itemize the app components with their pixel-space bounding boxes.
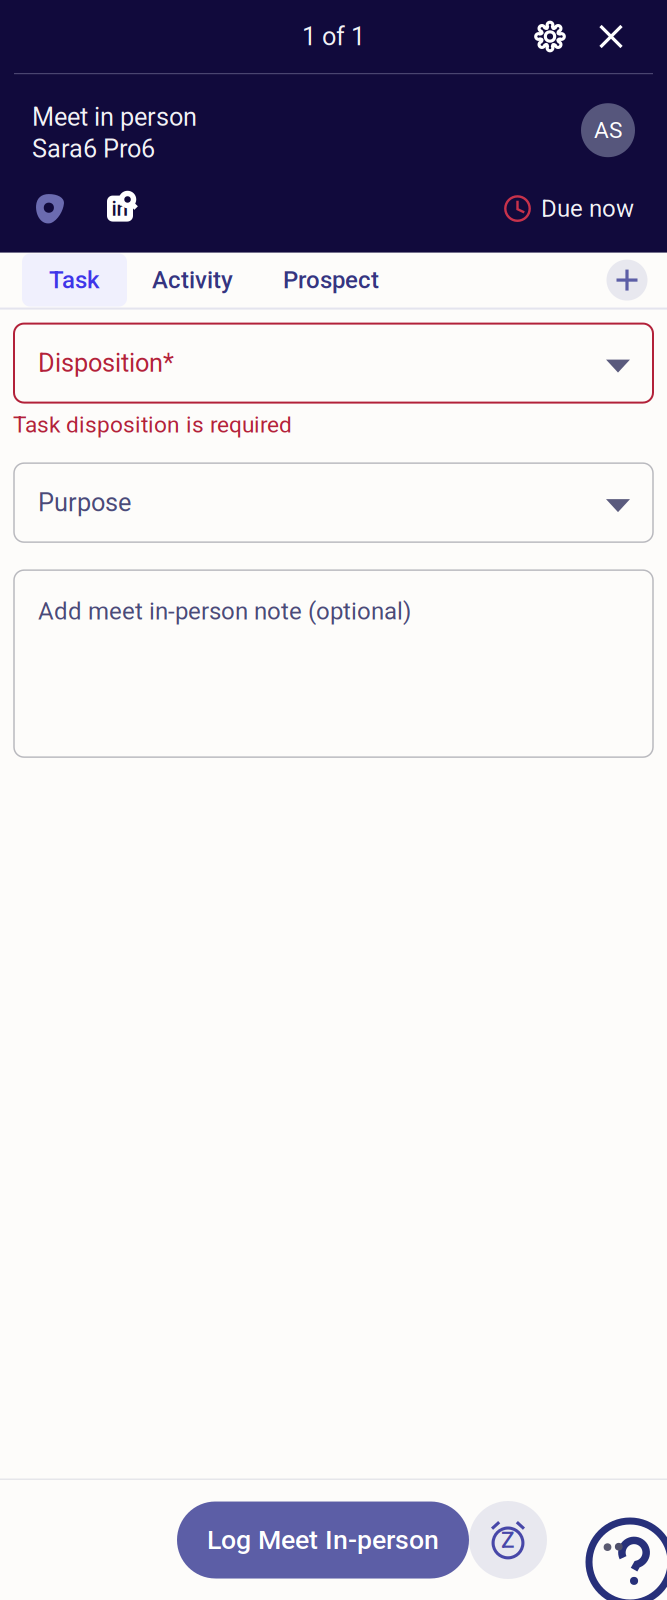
button[interactable]: Help	[585, 1473, 667, 1600]
staticText: AS	[594, 117, 622, 143]
button[interactable]: Prospect	[258, 254, 404, 307]
staticText: Task	[49, 266, 100, 294]
staticText: Purpose	[38, 488, 131, 517]
staticText: Log Meet In-person	[207, 1524, 439, 1556]
button[interactable]: LinkedIn search	[103, 192, 137, 226]
staticText: Sara6 Pro6	[32, 134, 155, 164]
button[interactable]: Add	[600, 254, 654, 307]
staticText: Disposition*	[38, 348, 174, 378]
button[interactable]: Purpose	[14, 463, 653, 542]
button[interactable]: Task	[22, 254, 127, 307]
staticText: Add meet in-person note (optional)	[38, 597, 411, 625]
staticText: Z	[501, 1527, 515, 1553]
staticText: in	[111, 196, 128, 221]
button[interactable]: Snooze	[469, 1501, 547, 1579]
button[interactable]: Log Meet In-person	[177, 1501, 469, 1578]
button[interactable]: Settings	[521, 4, 579, 68]
staticText: Prospect	[283, 266, 379, 294]
button[interactable]: Add meet in-person note (optional)	[14, 570, 653, 757]
staticText: 1 of 1	[302, 22, 365, 51]
button[interactable]: Account	[33, 192, 67, 226]
staticText: Activity	[152, 266, 233, 294]
staticText: Task disposition is required	[13, 412, 292, 438]
staticText: Meet in person	[32, 102, 197, 132]
button[interactable]: Close	[585, 4, 637, 68]
button[interactable]: Activity	[127, 254, 258, 307]
staticText: Due now	[541, 194, 634, 223]
button[interactable]: Disposition*	[14, 324, 653, 403]
